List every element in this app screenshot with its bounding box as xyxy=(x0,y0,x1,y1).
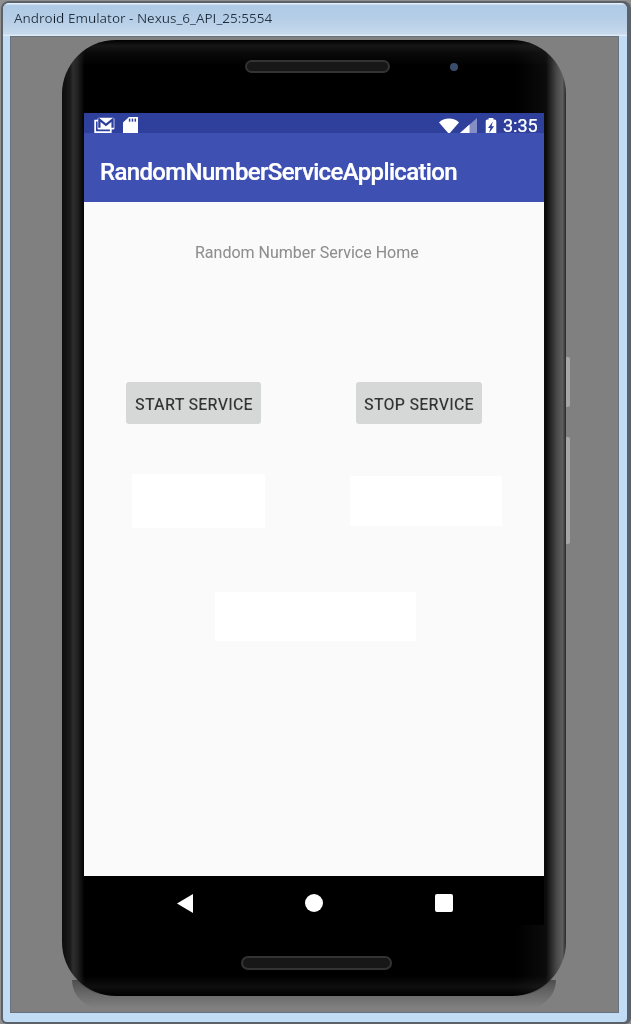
button[interactable]: STOP SERVICE xyxy=(356,382,482,424)
staticText: START SERVICE xyxy=(135,395,253,414)
staticText: Android Emulator - Nexus_6_API_25:5554 xyxy=(14,9,273,27)
staticText: 3:35 xyxy=(503,115,538,135)
staticText: Random Number Service Home xyxy=(195,243,419,262)
staticText: RandomNumberServiceApplication xyxy=(100,158,458,186)
staticText: STOP SERVICE xyxy=(364,395,474,414)
button[interactable]: Home xyxy=(292,881,336,925)
button[interactable]: Back xyxy=(163,881,207,925)
button[interactable]: Recent apps xyxy=(422,881,466,925)
button[interactable]: START SERVICE xyxy=(126,382,261,424)
